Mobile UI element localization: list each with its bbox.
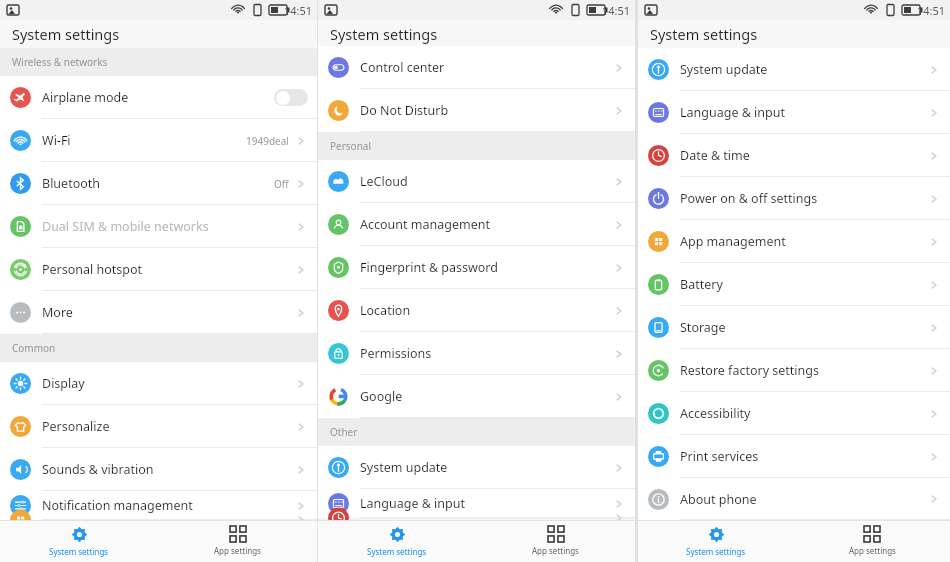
staticText: Sounds & vibration	[42, 461, 296, 478]
staticText: Power on & off settings	[680, 190, 929, 207]
staticText: 1949deal	[246, 134, 289, 148]
staticText: About phone	[680, 491, 929, 508]
staticText: Personal hotspot	[42, 261, 296, 278]
button[interactable]: Battery	[638, 263, 950, 306]
staticText: Airplane mode	[42, 89, 274, 106]
staticText: Battery	[680, 276, 929, 293]
button[interactable]: Accessibility	[638, 392, 950, 435]
button[interactable]: Location	[318, 289, 635, 332]
staticText: Control center	[360, 59, 614, 76]
staticText: More	[42, 304, 296, 321]
staticText: Fingerprint & password	[360, 259, 614, 276]
button[interactable]: LeCloud	[318, 160, 635, 203]
staticText: Personalize	[42, 418, 296, 435]
staticText: System settings	[49, 546, 109, 557]
button[interactable]: Dual SIM & mobile networks	[0, 205, 317, 248]
staticText: Print services	[680, 448, 929, 465]
staticText: System settings	[330, 24, 438, 44]
button[interactable]: Power on & off settings	[638, 177, 950, 220]
staticText: System update	[680, 61, 929, 78]
staticText: Restore factory settings	[680, 362, 929, 379]
staticText: Date & time	[680, 147, 929, 164]
staticText: Account management	[360, 216, 614, 233]
button[interactable]: Wi-Fi	[0, 119, 317, 162]
staticText: Wi-Fi	[42, 132, 246, 149]
staticText: Off	[274, 177, 289, 191]
staticText: LeCloud	[360, 173, 614, 190]
staticText: System update	[360, 459, 614, 476]
button[interactable]: Personal hotspot	[0, 248, 317, 291]
button[interactable]: About phone	[638, 478, 950, 520]
button[interactable]: Google	[318, 375, 635, 418]
staticText: Wireless & networks	[12, 55, 108, 69]
staticText: Do Not Disturb	[360, 102, 614, 119]
button[interactable]: Print services	[638, 435, 950, 478]
staticText: System settings	[650, 24, 758, 44]
staticText: Accessibility	[680, 405, 929, 422]
button[interactable]: Control center	[318, 46, 635, 89]
button[interactable]: System update	[638, 48, 950, 91]
staticText: Display	[42, 375, 296, 392]
button[interactable]: Personalize	[0, 405, 317, 448]
button[interactable]: Sounds & vibration	[0, 448, 317, 491]
button[interactable]: Storage	[638, 306, 950, 349]
staticText: App settings	[532, 545, 579, 556]
staticText: App settings	[849, 545, 896, 556]
button[interactable]: Account management	[318, 203, 635, 246]
staticText: Common	[12, 341, 56, 355]
staticText: Personal	[330, 139, 372, 153]
staticText: System settings	[12, 24, 120, 44]
button[interactable]: Airplane mode toggle	[274, 89, 308, 106]
button[interactable]: System settings	[0, 520, 158, 562]
staticText: Dual SIM & mobile networks	[42, 218, 296, 235]
staticText: 14:51	[917, 3, 946, 18]
staticText: Language & input	[680, 104, 929, 121]
staticText: App management	[680, 233, 929, 250]
button[interactable]: Language & input	[318, 489, 635, 518]
staticText: Bluetooth	[42, 175, 274, 192]
button[interactable]: Permissions	[318, 332, 635, 375]
button[interactable]: System update	[318, 446, 635, 489]
staticText: 14:51	[284, 3, 313, 18]
staticText: System settings	[367, 546, 427, 557]
button[interactable]: System settings	[318, 520, 476, 562]
button[interactable]: More	[0, 291, 317, 334]
staticText: Storage	[680, 319, 929, 336]
staticText: 14:51	[602, 3, 631, 18]
button[interactable]: System settings	[638, 520, 794, 562]
staticText: Language & input	[360, 495, 614, 512]
button[interactable]: Do Not Disturb	[318, 89, 635, 132]
button[interactable]: Bluetooth	[0, 162, 317, 205]
button[interactable]: Notification management	[0, 491, 317, 520]
button[interactable]: Display	[0, 362, 317, 405]
staticText: Location	[360, 302, 614, 319]
button[interactable]: Airplane mode	[0, 76, 317, 119]
button[interactable]: App settings	[476, 520, 635, 562]
button[interactable]: Date & time	[638, 134, 950, 177]
staticText: System settings	[686, 546, 746, 557]
button[interactable]: App settings	[158, 520, 317, 562]
button[interactable]: Restore factory settings	[638, 349, 950, 392]
staticText: Permissions	[360, 345, 614, 362]
staticText: Other	[330, 425, 358, 439]
staticText: App settings	[214, 545, 261, 556]
button[interactable]: Language & input	[638, 91, 950, 134]
button[interactable]: App management	[638, 220, 950, 263]
staticText: Notification management	[42, 497, 296, 514]
button[interactable]: App settings	[794, 520, 950, 562]
button[interactable]: Fingerprint & password	[318, 246, 635, 289]
staticText: Google	[360, 388, 614, 405]
